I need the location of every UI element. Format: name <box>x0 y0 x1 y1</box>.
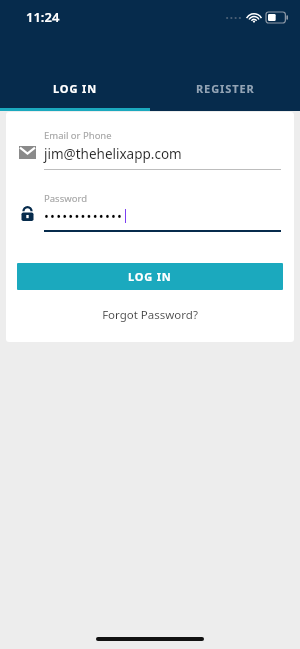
staticText: REGISTER <box>196 81 255 96</box>
button[interactable]: Email <box>6 129 294 170</box>
other: Password <box>18 205 36 223</box>
button[interactable]: Forgot Password? <box>6 307 294 323</box>
button[interactable]: Password <box>6 192 294 232</box>
staticText: ••••••••••••• <box>44 207 124 225</box>
staticText: LOG IN <box>128 269 172 284</box>
staticText: Email or Phone <box>44 129 112 142</box>
button[interactable]: LOG IN <box>0 68 150 108</box>
button[interactable]: LOG IN <box>17 263 283 290</box>
staticText: LOG IN <box>53 81 98 96</box>
other: Email <box>18 143 36 161</box>
staticText: Forgot Password? <box>102 307 198 323</box>
staticText: 11:24 <box>26 8 60 26</box>
staticText: jim@thehelixapp.com <box>44 145 182 163</box>
staticText: Password <box>44 192 87 205</box>
button[interactable]: REGISTER <box>150 68 300 108</box>
